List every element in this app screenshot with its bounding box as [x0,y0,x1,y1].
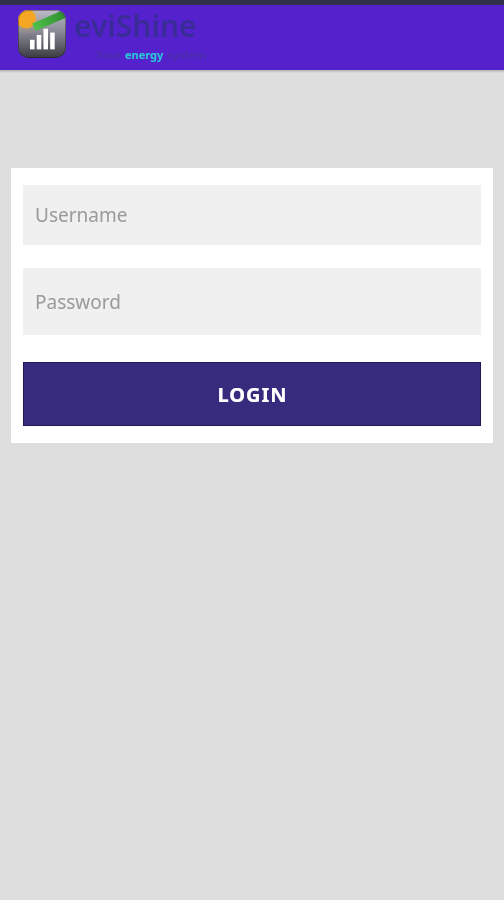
button[interactable]: Password [23,268,481,335]
staticText: Your [96,47,125,62]
staticText: Username [35,202,128,228]
staticText: energy [125,47,164,62]
staticText: eviShine [74,5,197,46]
staticText: Password [35,289,121,315]
button[interactable]: Username [23,185,481,245]
other: eviShine logo [18,10,66,58]
staticText: system [164,47,207,62]
button[interactable]: LOGIN [23,362,481,426]
staticText: LOGIN [217,381,288,408]
